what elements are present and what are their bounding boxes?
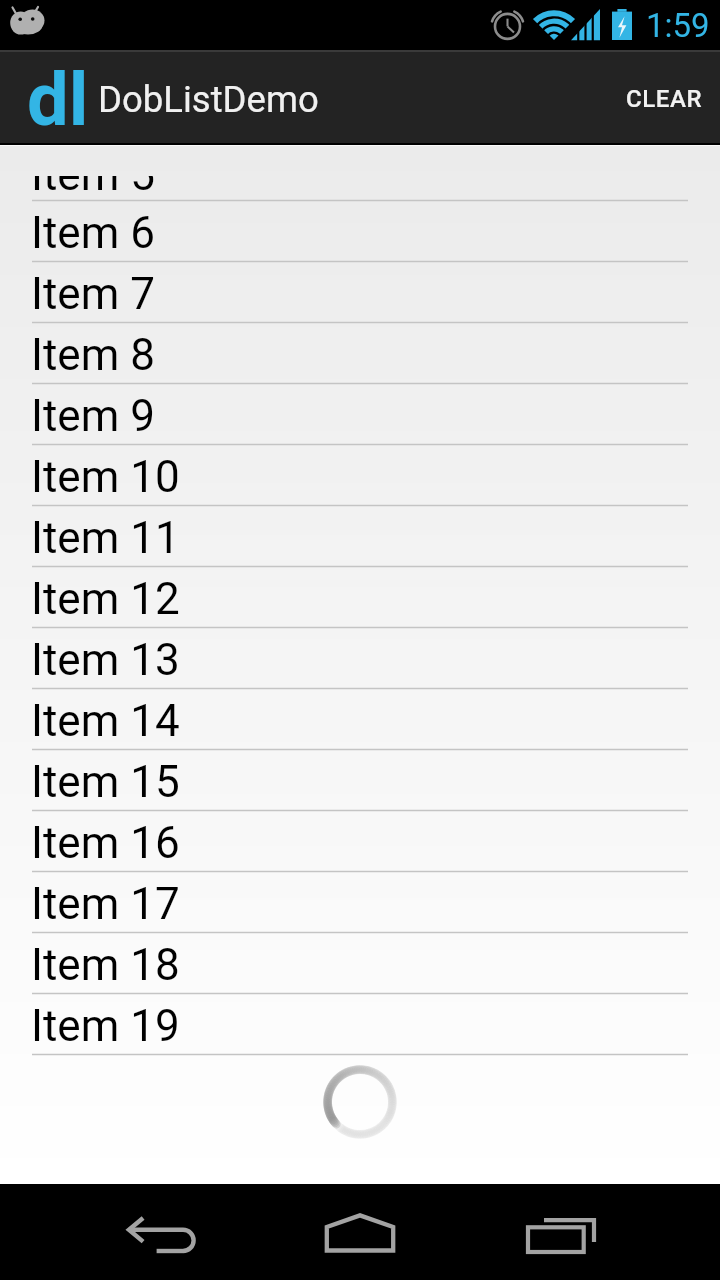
staticText: CLEAR — [626, 85, 703, 113]
button[interactable]: Item 7 — [0, 262, 720, 322]
staticText: Item 15 — [31, 756, 180, 808]
staticText: Item 11 — [31, 512, 180, 564]
button[interactable]: Recents — [500, 1184, 620, 1280]
staticText: Item 19 — [31, 1000, 180, 1052]
staticText: Item 17 — [31, 878, 180, 930]
staticText: Item 13 — [31, 634, 180, 686]
button[interactable]: Item 6 — [0, 201, 720, 261]
staticText: dl — [27, 56, 89, 143]
staticText: Item 7 — [31, 268, 155, 320]
staticText: Item 16 — [31, 817, 180, 869]
staticText: Item 6 — [31, 207, 155, 259]
button[interactable]: Item 14 — [0, 689, 720, 749]
button[interactable]: Item 13 — [0, 628, 720, 688]
button[interactable]: Item 5 — [0, 176, 720, 200]
staticText: Item 8 — [31, 329, 155, 381]
button[interactable]: Item 19 — [0, 994, 720, 1054]
button[interactable]: Back — [100, 1184, 220, 1280]
button[interactable]: Item 16 — [0, 811, 720, 871]
button[interactable]: Item 9 — [0, 384, 720, 444]
staticText: Item 12 — [31, 573, 180, 625]
button[interactable]: Item 10 — [0, 445, 720, 505]
button[interactable]: Home — [300, 1184, 420, 1280]
staticText: Item 9 — [31, 390, 155, 442]
button[interactable]: Item 8 — [0, 323, 720, 383]
button[interactable]: Item 15 — [0, 750, 720, 810]
staticText: Item 18 — [31, 939, 180, 991]
button[interactable]: CLEAR — [602, 50, 720, 145]
staticText: 1:59 — [646, 6, 710, 45]
staticText: Item 10 — [31, 451, 180, 503]
staticText: DobListDemo — [98, 78, 319, 121]
button[interactable]: Item 18 — [0, 933, 720, 993]
button[interactable]: Item 17 — [0, 872, 720, 932]
button[interactable]: Item 11 — [0, 506, 720, 566]
staticText: Item 5 — [31, 176, 155, 200]
button[interactable]: Item 12 — [0, 567, 720, 627]
staticText: Item 14 — [31, 695, 180, 747]
